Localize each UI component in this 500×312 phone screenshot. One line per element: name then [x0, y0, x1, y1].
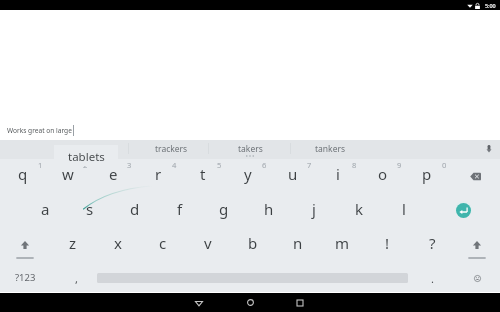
button[interactable]: 3 — [109, 155, 149, 175]
button[interactable]: v — [188, 233, 228, 253]
button[interactable]: Voice input — [483, 143, 495, 155]
staticText: t — [200, 164, 206, 184]
button[interactable]: e — [93, 164, 133, 184]
button[interactable]: , — [56, 268, 96, 288]
button[interactable]: 6 — [244, 155, 284, 175]
staticText: h — [264, 199, 274, 219]
button[interactable]: l — [384, 199, 424, 219]
staticText: w — [62, 164, 74, 184]
button[interactable]: Recent apps — [276, 293, 324, 312]
button[interactable]: u — [273, 164, 313, 184]
staticText: 5 — [217, 160, 222, 170]
button[interactable]: z — [53, 233, 93, 253]
staticText: Works great on large — [7, 126, 72, 135]
button[interactable]: a — [25, 199, 65, 219]
staticText: b — [248, 233, 258, 253]
staticText: g — [219, 199, 229, 219]
button[interactable]: 2 — [65, 155, 105, 175]
button[interactable]: 7 — [289, 155, 329, 175]
staticText: 7 — [307, 160, 312, 170]
staticText: p — [422, 164, 432, 184]
button[interactable]: ?123 — [5, 267, 45, 287]
staticText: a — [41, 199, 50, 219]
button[interactable]: r — [138, 164, 178, 184]
button[interactable]: ! — [367, 233, 407, 253]
staticText: q — [18, 164, 28, 184]
button[interactable]: 1 — [20, 155, 60, 175]
button[interactable]: q — [3, 164, 43, 184]
button[interactable]: ? — [412, 233, 452, 253]
button[interactable]: m — [322, 233, 362, 253]
button[interactable]: s — [70, 199, 110, 219]
button[interactable]: k — [339, 199, 379, 219]
staticText: trackers — [155, 143, 188, 155]
staticText: n — [293, 233, 303, 253]
button[interactable]: tankers — [290, 140, 370, 159]
staticText: 1 — [38, 160, 43, 170]
button[interactable]: 8 — [334, 155, 374, 175]
staticText: , — [75, 271, 78, 286]
staticText: 8 — [352, 160, 357, 170]
staticText: z — [69, 233, 77, 253]
button[interactable]: j — [294, 199, 334, 219]
button[interactable]: Home — [226, 293, 274, 312]
staticText: ! — [385, 233, 390, 253]
button[interactable]: 5 — [199, 155, 239, 175]
button[interactable]: b — [233, 233, 273, 253]
staticText: e — [109, 164, 118, 184]
staticText: v — [204, 233, 212, 253]
staticText: 0 — [442, 160, 447, 170]
button[interactable]: Emoji — [474, 275, 481, 282]
button[interactable]: o — [363, 164, 403, 184]
button[interactable]: y — [228, 164, 268, 184]
staticText: s — [86, 199, 94, 219]
staticText: tablets — [68, 149, 105, 165]
staticText: ?123 — [15, 271, 36, 284]
button[interactable]: d — [115, 199, 155, 219]
button[interactable]: g — [204, 199, 244, 219]
staticText: y — [244, 164, 252, 184]
button[interactable]: 4 — [154, 155, 194, 175]
staticText: c — [159, 233, 167, 253]
staticText: r — [155, 164, 162, 184]
button[interactable]: h — [249, 199, 289, 219]
button[interactable]: n — [278, 233, 318, 253]
button[interactable]: Backspace — [470, 172, 481, 181]
staticText: 5:00 — [485, 2, 496, 9]
staticText: 6 — [262, 160, 267, 170]
staticText: k — [355, 199, 364, 219]
staticText: j — [312, 199, 316, 219]
button[interactable]: i — [318, 164, 358, 184]
staticText: tankers — [315, 143, 346, 155]
button[interactable]: Shift — [466, 234, 488, 260]
staticText: . — [431, 271, 434, 286]
staticText: m — [335, 233, 350, 253]
button[interactable]: Enter — [456, 203, 471, 218]
staticText: x — [114, 233, 122, 253]
staticText: l — [402, 199, 406, 219]
staticText: u — [288, 164, 298, 184]
button[interactable]: x — [98, 233, 138, 253]
staticText: 9 — [397, 160, 402, 170]
button[interactable]: trackers — [131, 140, 211, 159]
button[interactable]: Shift — [14, 234, 36, 260]
staticText: ? — [429, 233, 436, 253]
button[interactable]: takers — [210, 140, 290, 159]
button[interactable]: Back — [175, 293, 223, 312]
button[interactable]: t — [183, 164, 223, 184]
staticText: o — [378, 164, 388, 184]
button[interactable]: p — [407, 164, 447, 184]
staticText: 4 — [172, 160, 177, 170]
staticText: takers — [238, 143, 263, 155]
staticText: f — [177, 199, 183, 219]
button[interactable]: 0 — [424, 155, 464, 175]
staticText: 2 — [83, 160, 88, 170]
button[interactable]: tablets — [54, 145, 118, 166]
button[interactable]: . — [412, 268, 452, 288]
button[interactable]: 9 — [379, 155, 419, 175]
staticText: 3 — [127, 160, 132, 170]
button[interactable]: c — [143, 233, 183, 253]
button[interactable]: f — [160, 199, 200, 219]
button[interactable]: w — [48, 164, 88, 184]
